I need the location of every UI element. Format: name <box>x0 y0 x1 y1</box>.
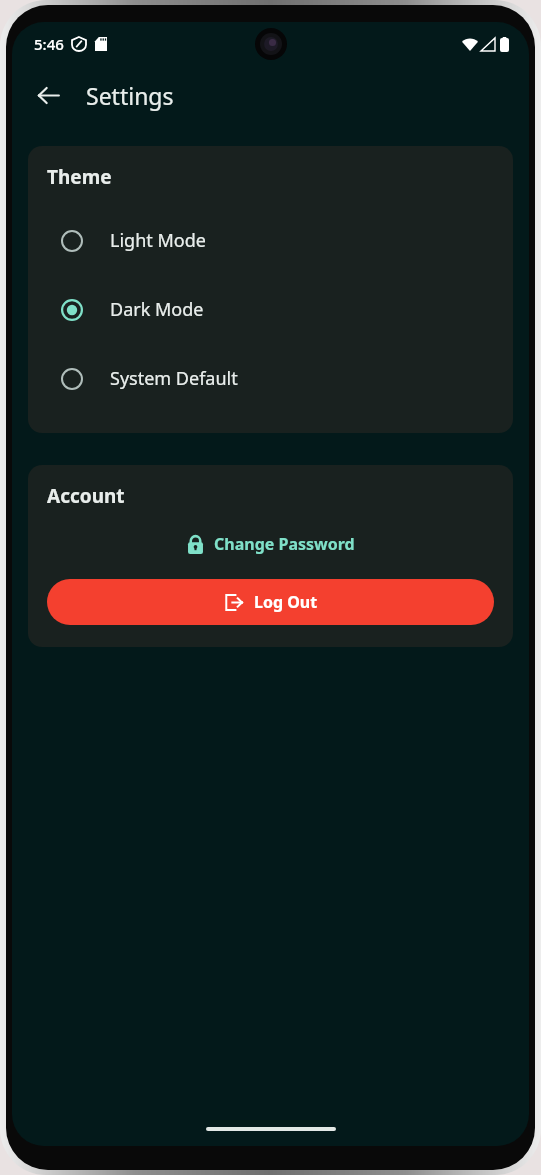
button[interactable]: System Default <box>47 344 494 413</box>
staticText: Account <box>47 483 125 509</box>
staticText: Settings <box>86 80 174 111</box>
button[interactable]: Log Out <box>47 579 494 625</box>
button[interactable]: Dark Mode <box>47 275 494 344</box>
staticText: Log Out <box>254 591 318 613</box>
button[interactable]: Change Password <box>179 527 363 561</box>
staticText: System Default <box>110 366 238 391</box>
button[interactable]: Light Mode <box>47 206 494 275</box>
staticText: Dark Mode <box>110 297 204 322</box>
staticText: Light Mode <box>110 228 206 253</box>
staticText: 5:46 <box>34 34 64 54</box>
staticText: Change Password <box>214 533 355 555</box>
button[interactable]: Back <box>24 71 72 119</box>
staticText: Theme <box>47 164 112 190</box>
